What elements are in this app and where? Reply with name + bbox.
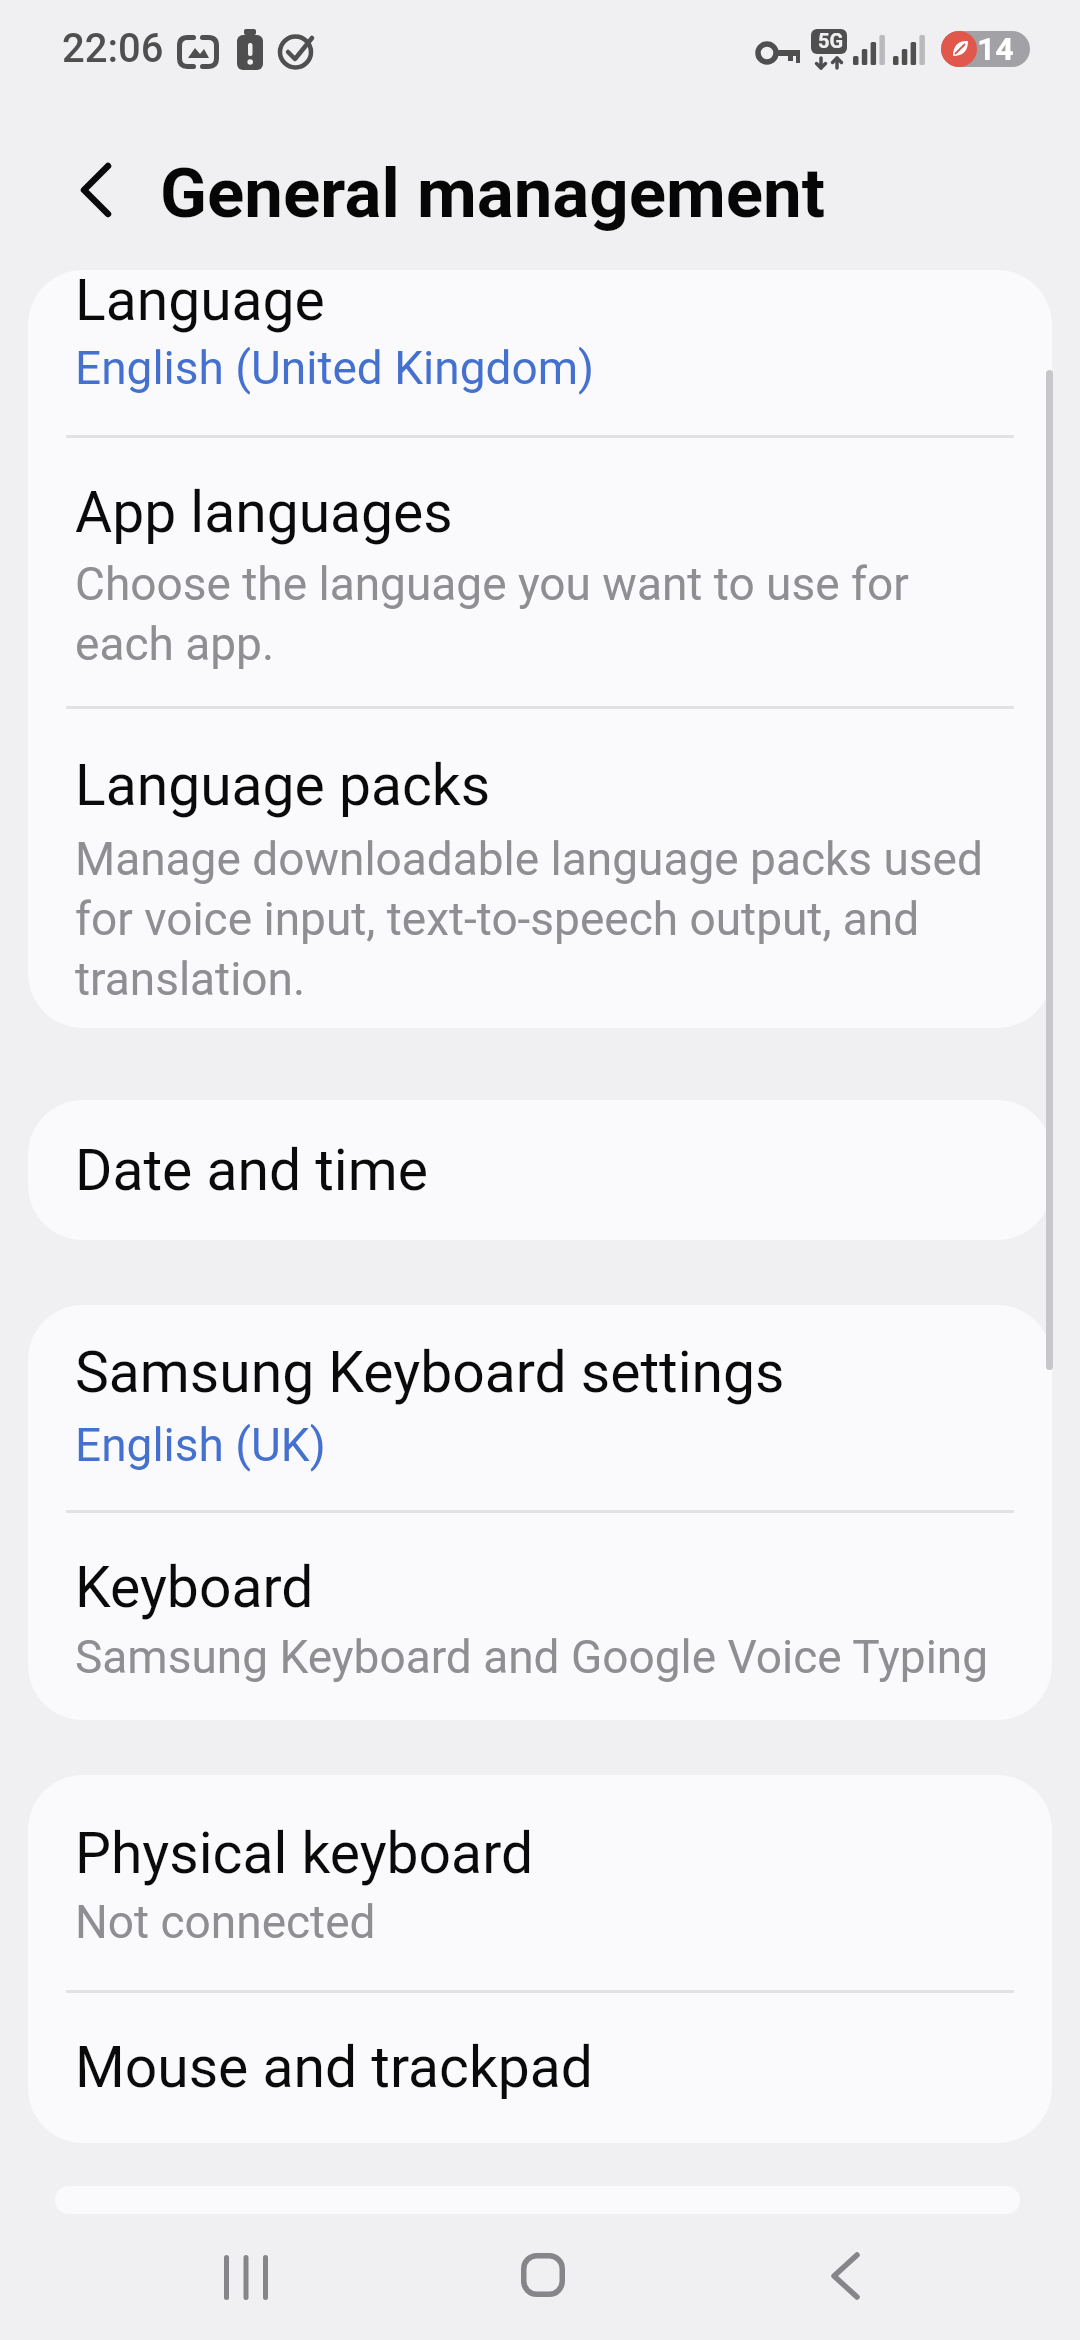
staticText: App languages [75, 477, 453, 547]
staticText: 5G [818, 29, 844, 53]
staticText: English (United Kingdom) [75, 336, 595, 396]
staticText: Not connected [75, 1890, 376, 1950]
staticText: Date and time [75, 1135, 428, 1205]
staticText: 14 [977, 31, 1014, 67]
staticText: 22:06 [62, 27, 164, 71]
button[interactable] [28, 1775, 1052, 1990]
button[interactable] [483, 2217, 603, 2337]
staticText: Mouse and trackpad [75, 2032, 593, 2102]
staticText: English (UK) [75, 1413, 326, 1473]
staticText: Manage downloadable language packs used … [75, 827, 983, 1007]
staticText: Language [75, 265, 325, 335]
button[interactable] [28, 706, 1052, 1028]
staticText: Physical keyboard [75, 1818, 534, 1888]
button[interactable] [28, 1990, 1052, 2143]
button[interactable] [28, 270, 1052, 436]
staticText: Samsung Keyboard and Google Voice Typing [75, 1625, 989, 1685]
staticText: General management [160, 150, 825, 234]
button[interactable] [28, 1100, 1052, 1240]
button[interactable] [60, 155, 130, 225]
staticText: Keyboard [75, 1552, 314, 1622]
button[interactable] [786, 2217, 906, 2337]
button[interactable] [28, 1510, 1052, 1720]
button[interactable] [186, 2217, 306, 2337]
button[interactable] [28, 1305, 1052, 1510]
staticText: Choose the language you want to use for … [75, 552, 909, 672]
staticText: Language packs [75, 750, 491, 820]
button[interactable] [28, 436, 1052, 706]
staticText: Samsung Keyboard settings [75, 1337, 785, 1407]
